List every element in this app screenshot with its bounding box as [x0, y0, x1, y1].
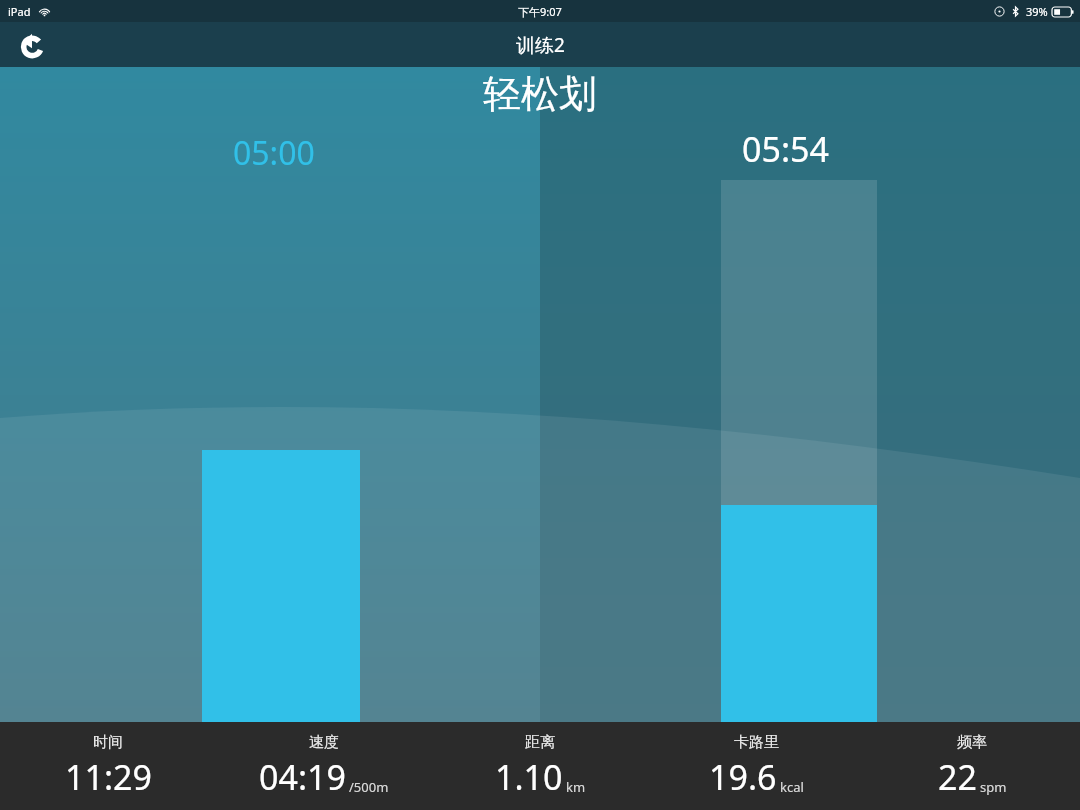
staticText: 05:00	[233, 131, 315, 175]
staticText: 11:29	[65, 754, 152, 800]
button[interactable]: 时间	[0, 733, 216, 800]
staticText: spm	[980, 778, 1007, 796]
staticText: 速度	[309, 733, 339, 752]
staticText: 39%	[1026, 4, 1048, 19]
staticText: 频率	[957, 733, 987, 752]
staticText: iPad	[8, 4, 31, 19]
button[interactable]: Back	[10, 23, 54, 67]
staticText: km	[566, 778, 586, 796]
button[interactable]: 速度	[216, 733, 432, 800]
staticText: /500m	[349, 778, 389, 796]
staticText: 下午9:07	[518, 4, 562, 19]
button[interactable]: 距离	[432, 733, 648, 800]
staticText: 时间	[93, 733, 123, 752]
staticText: 04:19	[259, 754, 346, 800]
staticText: 卡路里	[734, 733, 779, 752]
staticText: 22	[938, 754, 977, 800]
staticText: 05:54	[742, 126, 829, 172]
staticText: 训练2	[516, 32, 565, 58]
staticText: 轻松划	[483, 70, 597, 118]
button[interactable]: 频率	[864, 733, 1080, 800]
staticText: 距离	[525, 733, 555, 752]
staticText: 19.6	[709, 754, 777, 800]
button[interactable]: 卡路里	[648, 733, 864, 800]
staticText: 1.10	[495, 754, 563, 800]
staticText: kcal	[780, 778, 804, 796]
